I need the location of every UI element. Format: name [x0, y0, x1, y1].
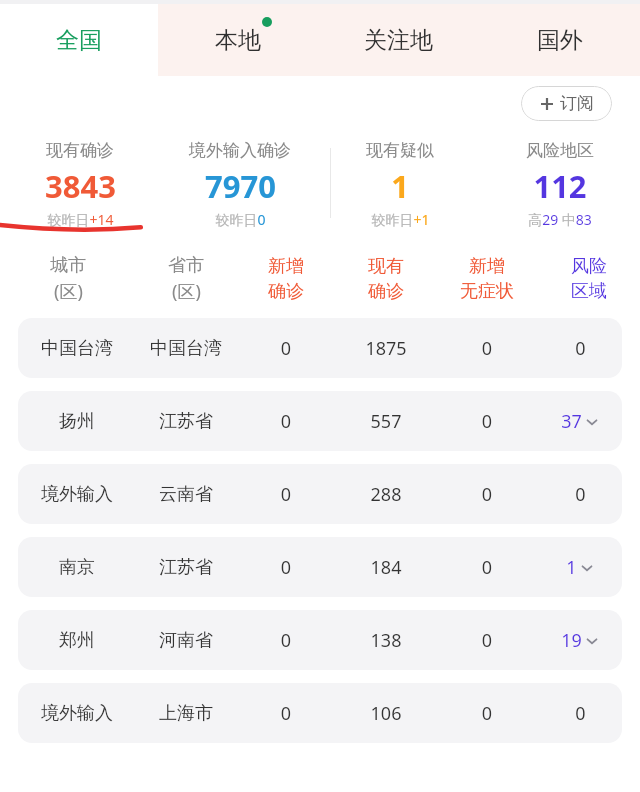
- staticText: 37: [561, 409, 582, 434]
- button[interactable]: 南京: [18, 537, 622, 597]
- button[interactable]: 现有确诊: [0, 130, 160, 240]
- button[interactable]: 全国: [0, 4, 158, 76]
- staticText: 江苏省: [136, 410, 236, 433]
- staticText: 0: [575, 482, 586, 507]
- staticText: 城市: [50, 254, 86, 277]
- staticText: 全国: [56, 26, 102, 55]
- staticText: 138: [336, 628, 436, 653]
- staticText: 本地: [215, 26, 261, 55]
- staticText: 7970: [205, 165, 276, 207]
- staticText: 0: [575, 701, 586, 726]
- staticText: 境外输入确诊: [189, 140, 291, 161]
- staticText: 较昨日+14: [47, 210, 114, 229]
- staticText: 0: [236, 409, 336, 434]
- button[interactable]: 关注地: [318, 4, 479, 76]
- staticText: 河南省: [136, 629, 236, 652]
- staticText: 0: [236, 555, 336, 580]
- staticText: 288: [336, 482, 436, 507]
- staticText: 境外输入: [18, 483, 136, 506]
- button[interactable]: 风险: [538, 240, 640, 318]
- button[interactable]: 扬州: [18, 391, 622, 451]
- staticText: 184: [336, 555, 436, 580]
- button[interactable]: 风险地区: [480, 130, 640, 240]
- staticText: 国外: [537, 26, 583, 55]
- staticText: 新增: [469, 255, 505, 278]
- staticText: 106: [336, 701, 436, 726]
- staticText: (区): [172, 279, 201, 304]
- staticText: 南京: [18, 556, 136, 579]
- staticText: 风险地区: [526, 140, 594, 161]
- staticText: 0: [436, 701, 538, 726]
- staticText: 确诊: [368, 280, 404, 303]
- staticText: 无症状: [460, 280, 514, 303]
- staticText: 郑州: [18, 629, 136, 652]
- staticText: 0: [436, 555, 538, 580]
- button[interactable]: 本地: [158, 4, 318, 76]
- staticText: 江苏省: [136, 556, 236, 579]
- staticText: 557: [336, 409, 436, 434]
- staticText: 现有: [368, 255, 404, 278]
- staticText: 112: [533, 165, 587, 207]
- staticText: 云南省: [136, 483, 236, 506]
- staticText: 19: [561, 628, 582, 653]
- staticText: 0: [236, 336, 336, 361]
- staticText: 0: [236, 701, 336, 726]
- staticText: 0: [436, 628, 538, 653]
- button[interactable]: 现有: [336, 240, 436, 318]
- staticText: 上海市: [136, 702, 236, 725]
- button[interactable]: 国外: [479, 4, 640, 76]
- staticText: 关注地: [364, 26, 433, 55]
- button[interactable]: 境外输入确诊: [160, 130, 320, 240]
- staticText: 现有疑似: [366, 140, 434, 161]
- button[interactable]: 省市: [136, 240, 236, 318]
- staticText: (区): [54, 279, 83, 304]
- staticText: 0: [436, 482, 538, 507]
- staticText: 1: [391, 165, 409, 207]
- staticText: 省市: [168, 254, 204, 277]
- button[interactable]: 新增: [436, 240, 538, 318]
- button[interactable]: 境外输入: [18, 683, 622, 743]
- staticText: 0: [236, 482, 336, 507]
- staticText: 3843: [45, 165, 116, 207]
- staticText: 订阅: [560, 93, 594, 114]
- staticText: 0: [236, 628, 336, 653]
- button[interactable]: 订阅: [521, 86, 612, 121]
- staticText: 确诊: [268, 280, 304, 303]
- button[interactable]: 郑州: [18, 610, 622, 670]
- button[interactable]: 境外输入: [18, 464, 622, 524]
- staticText: 0: [436, 409, 538, 434]
- button[interactable]: 城市: [0, 240, 136, 318]
- staticText: 较昨日+1: [371, 210, 430, 229]
- staticText: 新增: [268, 255, 304, 278]
- staticText: 扬州: [18, 410, 136, 433]
- staticText: 现有确诊: [46, 140, 114, 161]
- staticText: 区域: [571, 280, 607, 303]
- button[interactable]: 现有疑似: [320, 130, 480, 240]
- staticText: 中国台湾: [136, 337, 236, 360]
- staticText: 中国台湾: [18, 337, 136, 360]
- staticText: 高29 中83: [528, 210, 592, 229]
- staticText: 1875: [336, 336, 436, 361]
- staticText: 0: [436, 336, 538, 361]
- staticText: 境外输入: [18, 702, 136, 725]
- staticText: 较昨日0: [215, 210, 266, 229]
- button[interactable]: 中国台湾: [18, 318, 622, 378]
- staticText: 1: [566, 555, 577, 580]
- button[interactable]: 新增: [236, 240, 336, 318]
- staticText: 风险: [571, 255, 607, 278]
- staticText: 0: [575, 336, 586, 361]
